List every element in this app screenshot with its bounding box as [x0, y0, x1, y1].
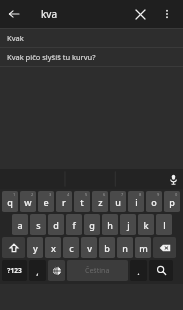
- staticText: k: [143, 219, 149, 231]
- staticText: 2: [31, 192, 34, 197]
- button[interactable]: Search: [149, 260, 173, 281]
- staticText: d: [53, 219, 59, 231]
- staticText: t: [80, 196, 84, 208]
- staticText: 0: [175, 192, 178, 197]
- button[interactable]: o: [146, 191, 162, 212]
- button[interactable]: Shift: [2, 237, 25, 258]
- button[interactable]: q: [2, 191, 18, 212]
- staticText: r: [62, 196, 66, 208]
- staticText: 7: [121, 192, 124, 197]
- button[interactable]: Čeština: [67, 260, 128, 281]
- staticText: Kvak pičo slyšíš tu kurvu?: [7, 52, 96, 62]
- button[interactable]: w: [20, 191, 36, 212]
- staticText: p: [169, 196, 175, 208]
- staticText: u: [115, 196, 121, 208]
- staticText: q: [7, 196, 13, 208]
- button[interactable]: d: [48, 214, 64, 235]
- staticText: g: [89, 219, 95, 231]
- button[interactable]: n: [117, 237, 133, 258]
- staticText: 5: [85, 192, 88, 197]
- staticText: .: [137, 265, 140, 277]
- button[interactable]: l: [156, 214, 172, 235]
- button[interactable]: ,: [29, 260, 46, 281]
- button[interactable]: t: [74, 191, 90, 212]
- button[interactable]: g: [84, 214, 100, 235]
- button[interactable]: Backspace: [153, 237, 176, 258]
- button[interactable]: ?123: [2, 260, 27, 281]
- staticText: m: [139, 242, 148, 254]
- button[interactable]: k: [138, 214, 154, 235]
- button[interactable]: u: [110, 191, 126, 212]
- button[interactable]: Voice input: [163, 169, 183, 189]
- staticText: z: [98, 196, 103, 208]
- button[interactable]: a: [12, 214, 28, 235]
- staticText: 8: [139, 192, 142, 197]
- button[interactable]: m: [135, 237, 151, 258]
- staticText: n: [122, 242, 128, 254]
- staticText: kva: [41, 7, 58, 21]
- button[interactable]: More options: [154, 1, 180, 27]
- staticText: h: [107, 219, 113, 231]
- staticText: f: [72, 219, 76, 231]
- button[interactable]: b: [99, 237, 115, 258]
- staticText: ,: [36, 265, 39, 277]
- staticText: Kvak: [7, 33, 24, 43]
- button[interactable]: Change keyboard: [48, 260, 65, 281]
- button[interactable]: p: [164, 191, 180, 212]
- staticText: 9: [157, 192, 160, 197]
- button[interactable]: f: [66, 214, 82, 235]
- staticText: 6: [103, 192, 106, 197]
- staticText: o: [151, 196, 157, 208]
- button[interactable]: j: [120, 214, 136, 235]
- button[interactable]: h: [102, 214, 118, 235]
- button[interactable]: z: [92, 191, 108, 212]
- staticText: c: [69, 242, 74, 254]
- staticText: s: [36, 219, 41, 231]
- button[interactable]: e: [38, 191, 54, 212]
- staticText: b: [104, 242, 110, 254]
- button[interactable]: Back: [0, 0, 28, 28]
- staticText: l: [163, 219, 166, 231]
- button[interactable]: Kvak: [0, 29, 183, 47]
- staticText: i: [135, 196, 138, 208]
- staticText: Čeština: [85, 266, 110, 276]
- button[interactable]: s: [30, 214, 46, 235]
- button[interactable]: y: [27, 237, 43, 258]
- button[interactable]: i: [128, 191, 144, 212]
- button[interactable]: Kvak pičo slyšíš tu kurvu?: [0, 48, 183, 66]
- staticText: 4: [67, 192, 70, 197]
- staticText: y: [33, 242, 38, 254]
- staticText: x: [51, 242, 56, 254]
- button[interactable]: x: [45, 237, 61, 258]
- button[interactable]: Clear: [127, 1, 153, 27]
- staticText: 1: [13, 192, 16, 197]
- button[interactable]: .: [130, 260, 147, 281]
- staticText: ?123: [7, 266, 22, 275]
- staticText: 3: [49, 192, 52, 197]
- button[interactable]: c: [63, 237, 79, 258]
- button[interactable]: r: [56, 191, 72, 212]
- staticText: w: [24, 196, 32, 208]
- staticText: j: [127, 219, 130, 231]
- staticText: e: [43, 196, 49, 208]
- staticText: a: [17, 219, 23, 231]
- button[interactable]: v: [81, 237, 97, 258]
- staticText: v: [87, 242, 92, 254]
